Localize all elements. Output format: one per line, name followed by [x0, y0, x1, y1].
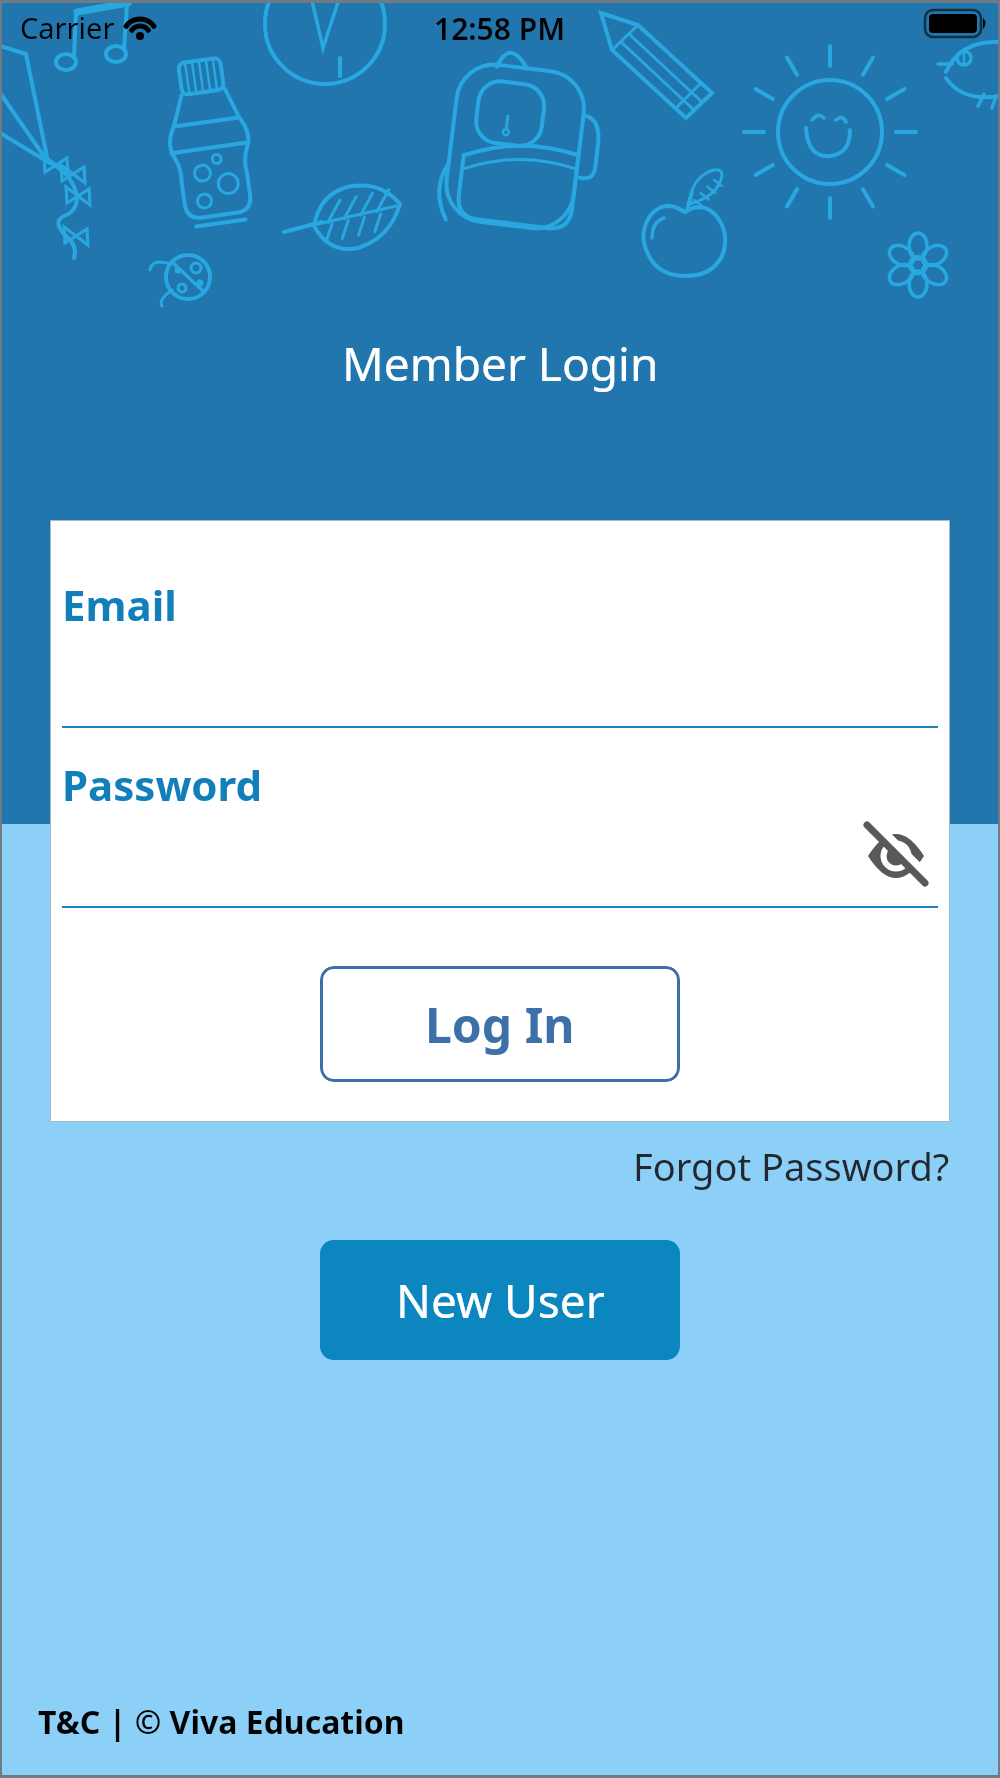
staticText: Carrier: [20, 8, 115, 47]
staticText: 12:58 PM: [434, 8, 566, 49]
staticText: New User: [396, 1269, 605, 1332]
staticText: Password: [62, 756, 263, 813]
button[interactable]: T&C | © Viva Education: [38, 1700, 405, 1744]
staticText: T&C | © Viva Education: [38, 1700, 405, 1744]
staticText: Member Login: [342, 332, 659, 395]
button[interactable]: Log In: [320, 966, 680, 1082]
button[interactable]: [866, 824, 926, 884]
staticText: Email: [62, 576, 177, 633]
button[interactable]: Forgot Password?: [633, 1140, 950, 1192]
staticText: Forgot Password?: [633, 1140, 950, 1192]
button[interactable]: New User: [320, 1240, 680, 1360]
staticText: Log In: [425, 992, 575, 1057]
